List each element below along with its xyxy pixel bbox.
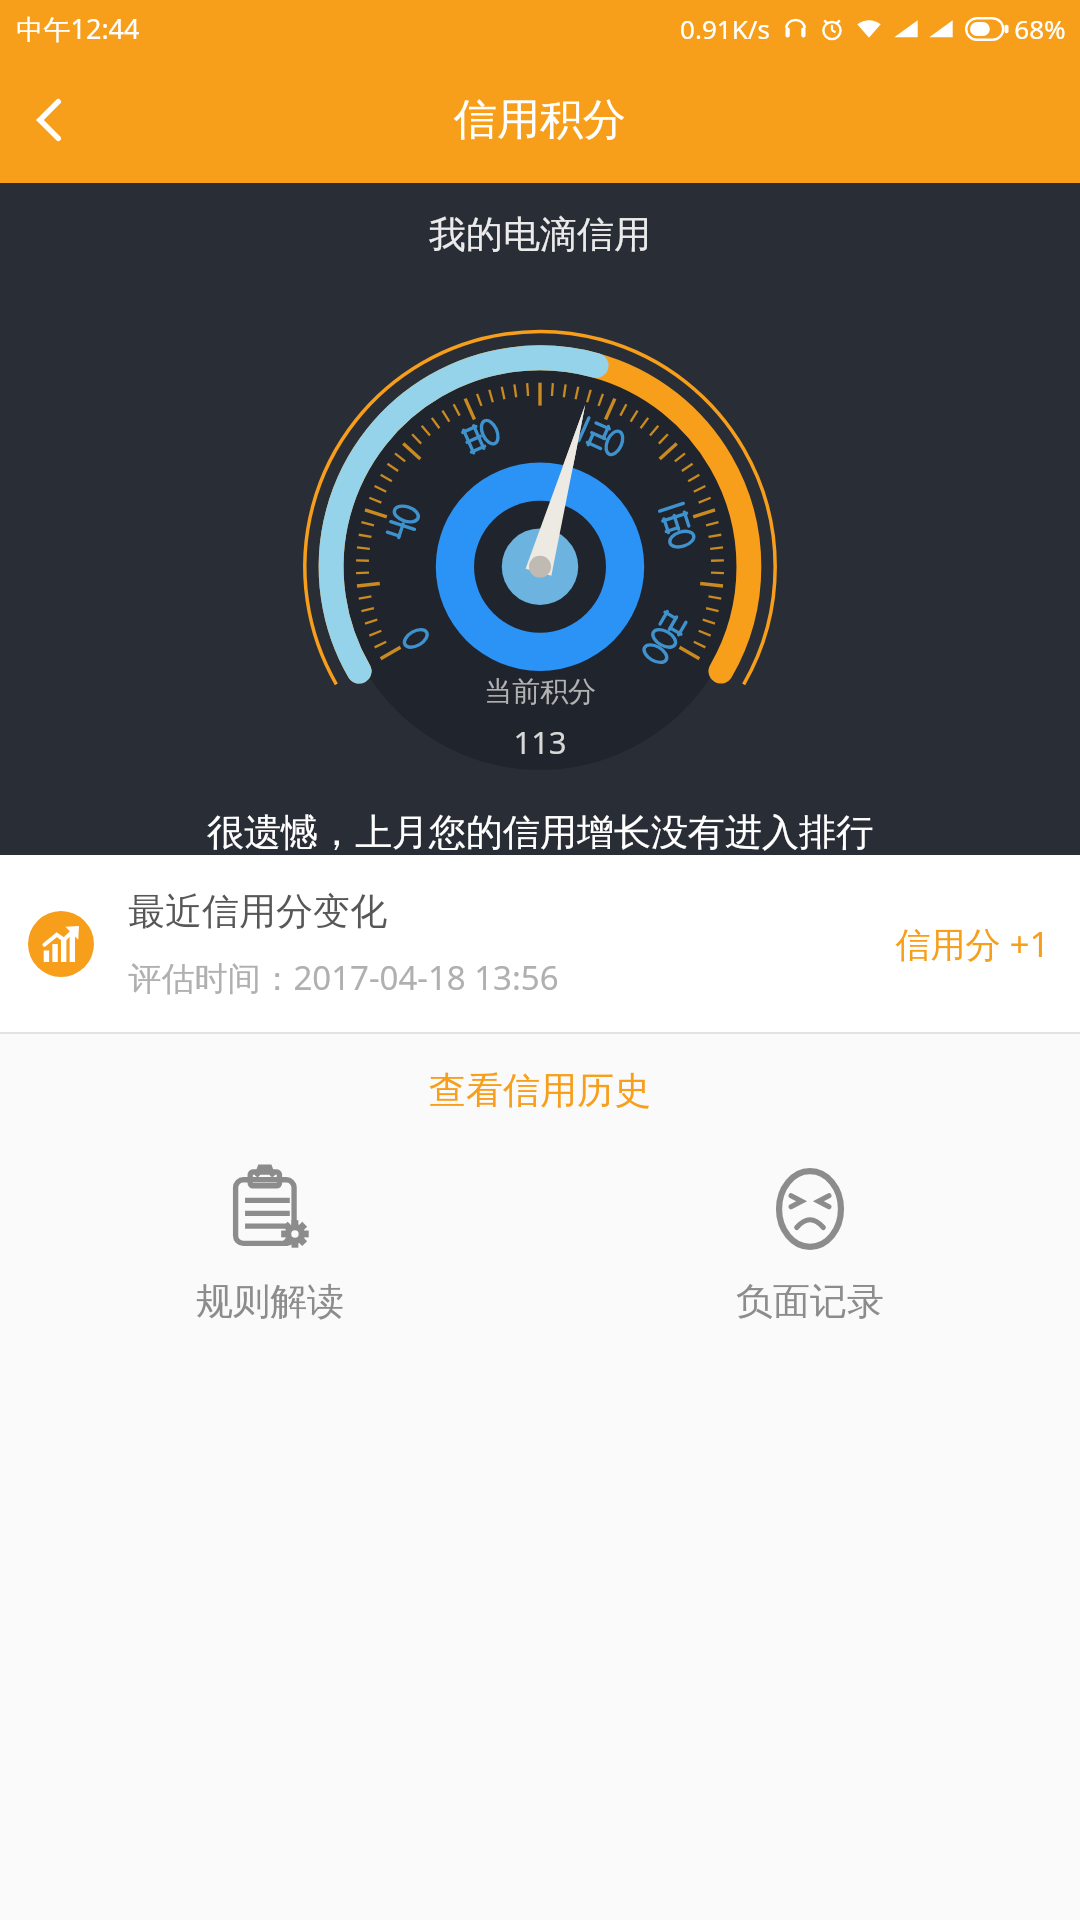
staticText: 负面记录	[736, 1278, 884, 1325]
staticText: 查看信用历史	[429, 1067, 651, 1114]
staticText: 信用积分	[454, 93, 626, 147]
button[interactable]: 最近信用分变化	[0, 855, 1080, 1032]
staticText: 中午12:44	[16, 10, 140, 47]
staticText: 评估时间：2017-04-18 13:56	[128, 955, 559, 1000]
staticText: 113	[513, 721, 567, 763]
staticText: 我的电滴信用	[429, 211, 651, 258]
staticText: 信用分 +1	[895, 920, 1050, 968]
button[interactable]: 查看信用历史	[0, 1034, 1080, 1146]
staticText: 当前积分	[484, 674, 596, 709]
staticText: 很遗憾，上月您的信用增长没有进入排行	[207, 809, 873, 855]
staticText: 最近信用分变化	[128, 888, 387, 935]
button[interactable]: 规则解读	[0, 1146, 540, 1347]
staticText: 68%	[1014, 11, 1066, 46]
staticText: 规则解读	[196, 1278, 344, 1325]
button[interactable]: 负面记录	[540, 1146, 1080, 1347]
staticText: 0.91K/s	[680, 11, 770, 46]
button[interactable]: Back	[0, 70, 100, 170]
